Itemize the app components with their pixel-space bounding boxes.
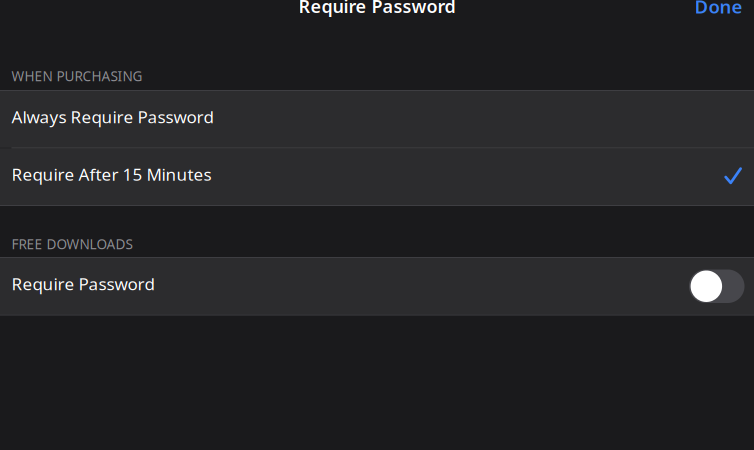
button[interactable]: Require Password [688, 269, 744, 303]
button[interactable]: Require Password [0, 258, 754, 314]
staticText: Require Password [11, 272, 154, 295]
staticText: FREE DOWNLOADS [11, 235, 132, 253]
button[interactable]: Done [678, 0, 754, 25]
staticText: WHEN PURCHASING [11, 67, 142, 85]
button[interactable]: Always Require Password [0, 91, 754, 147]
staticText: Require After 15 Minutes [11, 163, 211, 186]
staticText: Require Password [298, 0, 455, 18]
button[interactable]: Require After 15 Minutes [0, 148, 754, 205]
staticText: Done [694, 0, 742, 19]
staticText: Always Require Password [11, 105, 213, 128]
